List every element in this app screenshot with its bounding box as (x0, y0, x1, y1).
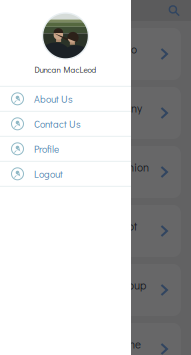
staticText: Gemini Trading Company (21, 101, 142, 115)
button[interactable]: Tamworth Hardware Co (10, 28, 181, 80)
staticText: Riverbank Supply Depot (21, 219, 137, 233)
staticText: Tamworth Hardware Co (21, 42, 137, 56)
button[interactable]: Northgate Partners Group (10, 264, 181, 316)
staticText: Northgate Partners Group (21, 278, 146, 292)
button[interactable]: Ashford Town Credit Union (10, 146, 181, 198)
staticText: Logout (34, 167, 63, 180)
staticText: Duncan MacLeod (34, 64, 96, 75)
button[interactable]: Search (164, 0, 184, 20)
staticText: Ashford Town Credit Union (21, 160, 149, 174)
button[interactable]: Profile (0, 137, 131, 161)
button[interactable]: Contact Us (0, 112, 131, 136)
button[interactable]: Riverbank Supply Depot (10, 205, 181, 257)
button[interactable]: Riverside Savings Online (10, 323, 181, 355)
button[interactable]: About Us (0, 87, 131, 111)
staticText: Riverside Savings Online (21, 337, 141, 351)
staticText: About Us (34, 92, 73, 105)
button[interactable]: Logout (0, 162, 131, 186)
button[interactable]: Gemini Trading Company (10, 87, 181, 139)
staticText: Contact Us (34, 117, 81, 130)
staticText: Profile (34, 142, 59, 155)
